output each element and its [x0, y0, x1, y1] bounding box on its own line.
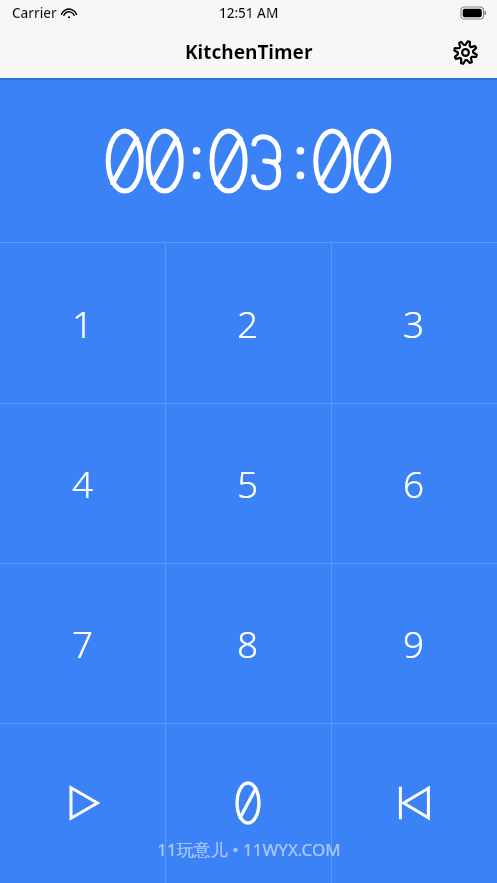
staticText: 9	[403, 618, 425, 668]
staticText: 8	[237, 618, 259, 668]
staticText: 6	[403, 458, 425, 508]
button[interactable]: 8	[165, 563, 331, 723]
button[interactable]: Start	[0, 723, 165, 883]
button[interactable]: 6	[331, 403, 497, 563]
button[interactable]: Timer 00:03:00	[0, 80, 497, 242]
button[interactable]: 4	[0, 403, 165, 563]
staticText: 11玩意儿 • 11WYX.COM	[157, 838, 341, 861]
button[interactable]: 1	[0, 242, 165, 403]
staticText: 7	[72, 618, 94, 668]
button[interactable]: 2	[165, 242, 331, 403]
staticText: KitchenTimer	[185, 39, 313, 65]
staticText: 1	[72, 298, 94, 348]
staticText: 2	[237, 298, 259, 348]
button[interactable]: 3	[331, 242, 497, 403]
staticText: 5	[237, 458, 259, 508]
staticText: 3	[403, 298, 425, 348]
button[interactable]: 9	[331, 563, 497, 723]
button[interactable]: 7	[0, 563, 165, 723]
button[interactable]: 5	[165, 403, 331, 563]
button[interactable]: Settings	[445, 32, 485, 72]
staticText: Carrier	[12, 4, 57, 22]
button[interactable]: Reset	[331, 723, 497, 883]
staticText: 12:51 AM	[219, 4, 279, 22]
button[interactable]	[165, 723, 331, 883]
staticText: 4	[72, 458, 94, 508]
